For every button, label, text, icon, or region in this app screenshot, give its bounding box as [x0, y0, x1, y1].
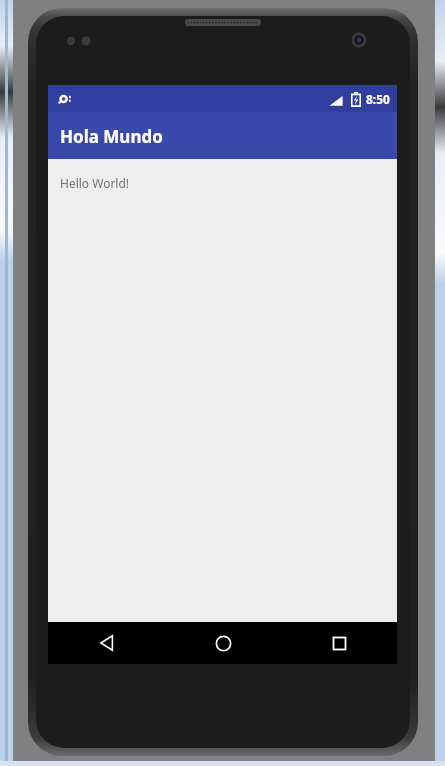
button[interactable]: Hola Mundo	[48, 112, 397, 159]
button[interactable]: Home	[165, 622, 281, 664]
staticText: Hola Mundo	[60, 125, 163, 148]
button[interactable]: Back	[48, 622, 165, 664]
button[interactable]: Recent apps	[281, 622, 397, 664]
staticText: Hello World!	[60, 175, 130, 191]
staticText: 8:50	[366, 91, 390, 107]
